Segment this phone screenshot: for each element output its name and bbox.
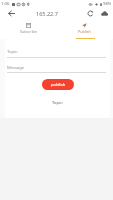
staticText: 98% [103, 1, 112, 7]
staticText: Message [7, 65, 25, 71]
button[interactable]: Cloud upload [98, 7, 110, 19]
staticText: Subscribe [20, 29, 37, 34]
staticText: Topic: [52, 100, 64, 106]
staticText: publish [51, 82, 66, 88]
staticText: Publish [78, 29, 91, 34]
button[interactable]: Publish [56, 19, 113, 38]
button[interactable]: publish [42, 79, 74, 90]
staticText: 1:06 [1, 1, 10, 7]
button[interactable]: Subscribe [0, 19, 56, 38]
staticText: Topic: [7, 49, 19, 55]
button[interactable]: Back [5, 7, 17, 19]
button[interactable]: Refresh [84, 7, 96, 19]
staticText: 165.22.7 [36, 10, 58, 17]
